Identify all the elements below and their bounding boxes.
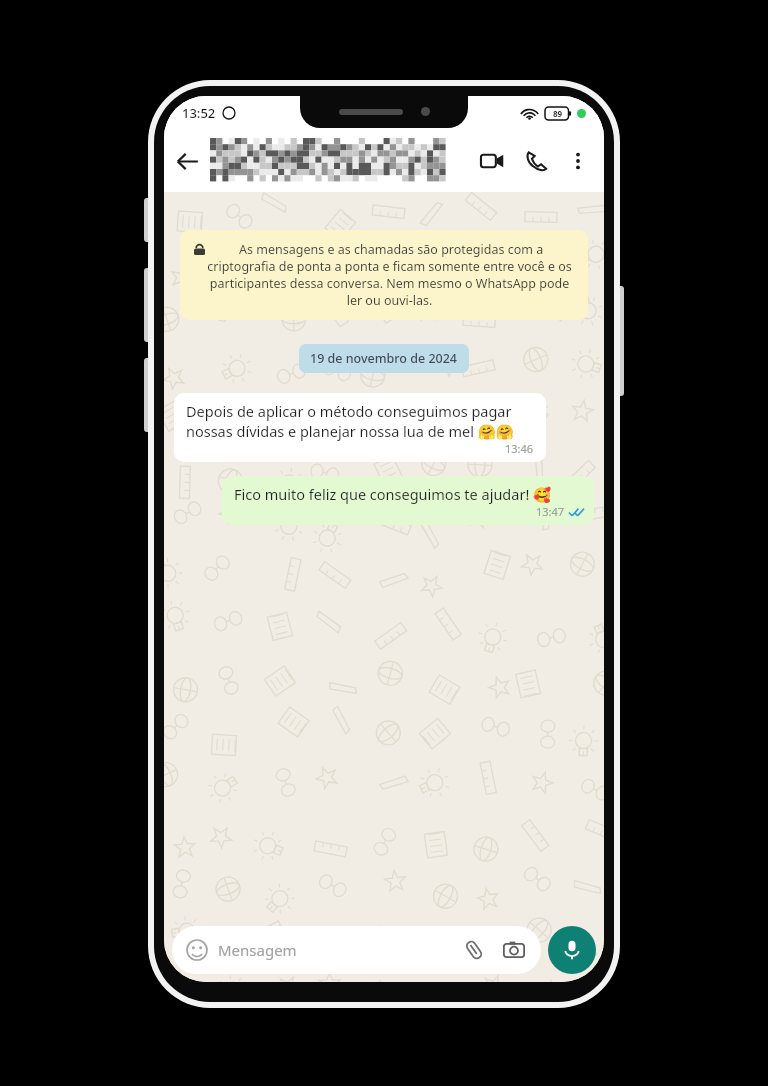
staticText: As mensagens e as chamadas são protegida… <box>205 241 574 309</box>
button[interactable]: Anexar <box>459 935 489 965</box>
button[interactable]: Câmera <box>499 935 529 965</box>
button[interactable]: 19 de novembro de 2024 <box>299 344 469 373</box>
button[interactable]: Mais opções <box>558 141 598 181</box>
staticText: 89 <box>553 108 563 119</box>
button[interactable]: Depois de aplicar o método conseguimos p… <box>174 393 546 462</box>
other: Emoji <box>184 937 210 963</box>
button[interactable]: Chamada de voz <box>514 139 558 183</box>
button[interactable]: Fico muito feliz que conseguimos te ajud… <box>222 476 594 525</box>
staticText: 19 de novembro de 2024 <box>310 350 458 367</box>
button[interactable]: As mensagens e as chamadas são protegida… <box>180 230 588 320</box>
button[interactable]: Chamada de vídeo <box>470 139 514 183</box>
staticText: Depois de aplicar o método conseguimos p… <box>186 401 534 441</box>
staticText: Fico muito feliz que conseguimos te ajud… <box>234 484 552 504</box>
button[interactable]: Voltar <box>164 138 210 184</box>
staticText: 13:46 <box>505 441 534 456</box>
staticText: Mensagem <box>218 940 297 960</box>
staticText: 13:52 <box>182 104 216 122</box>
staticText: 13:47 <box>536 504 565 519</box>
button[interactable]: Emoji <box>172 926 541 974</box>
button[interactable]: Gravar áudio <box>548 926 596 974</box>
